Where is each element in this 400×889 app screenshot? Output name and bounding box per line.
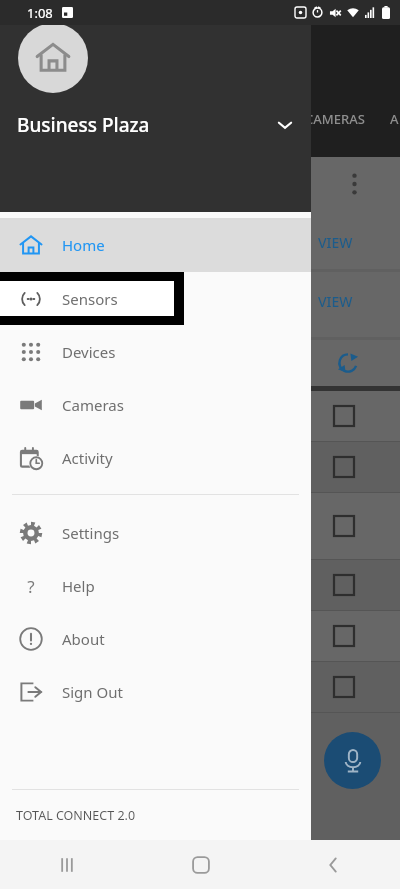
button[interactable]: Back	[267, 840, 400, 889]
staticText: Home	[62, 235, 105, 255]
button[interactable]: Cameras	[0, 378, 311, 431]
button[interactable]: Voice command	[324, 732, 381, 789]
staticText: VIEW	[318, 233, 353, 252]
staticText: TOTAL CONNECT 2.0	[16, 807, 136, 824]
button[interactable]: Home	[134, 840, 267, 889]
staticText: Business Plaza	[17, 112, 150, 138]
button[interactable]: Activity	[0, 431, 311, 484]
staticText: Help	[62, 576, 95, 596]
staticText: CAMERAS	[305, 110, 365, 128]
button[interactable]: Sign Out	[0, 665, 311, 718]
button[interactable]: Switch location	[268, 108, 302, 142]
button[interactable]: Devices	[0, 325, 311, 378]
staticText: Sign Out	[62, 682, 123, 702]
button[interactable]: About	[0, 612, 311, 665]
staticText: ?	[27, 575, 35, 598]
button[interactable]: Sensors	[0, 281, 174, 316]
button[interactable]: Business Plaza	[0, 0, 311, 212]
staticText: Sensors	[62, 289, 118, 309]
button[interactable]: Home	[0, 218, 311, 272]
button[interactable]: Recent apps	[0, 840, 134, 889]
staticText: Activity	[62, 448, 113, 468]
staticText: Settings	[62, 523, 120, 543]
staticText: Devices	[62, 342, 116, 362]
staticText: VIEW	[318, 292, 353, 311]
staticText: Cameras	[62, 395, 124, 415]
staticText: About	[62, 629, 105, 649]
button[interactable]: ?	[0, 559, 311, 612]
staticText: 1:08	[27, 4, 53, 22]
staticText: A	[390, 110, 399, 128]
button[interactable]: Settings	[0, 506, 311, 559]
